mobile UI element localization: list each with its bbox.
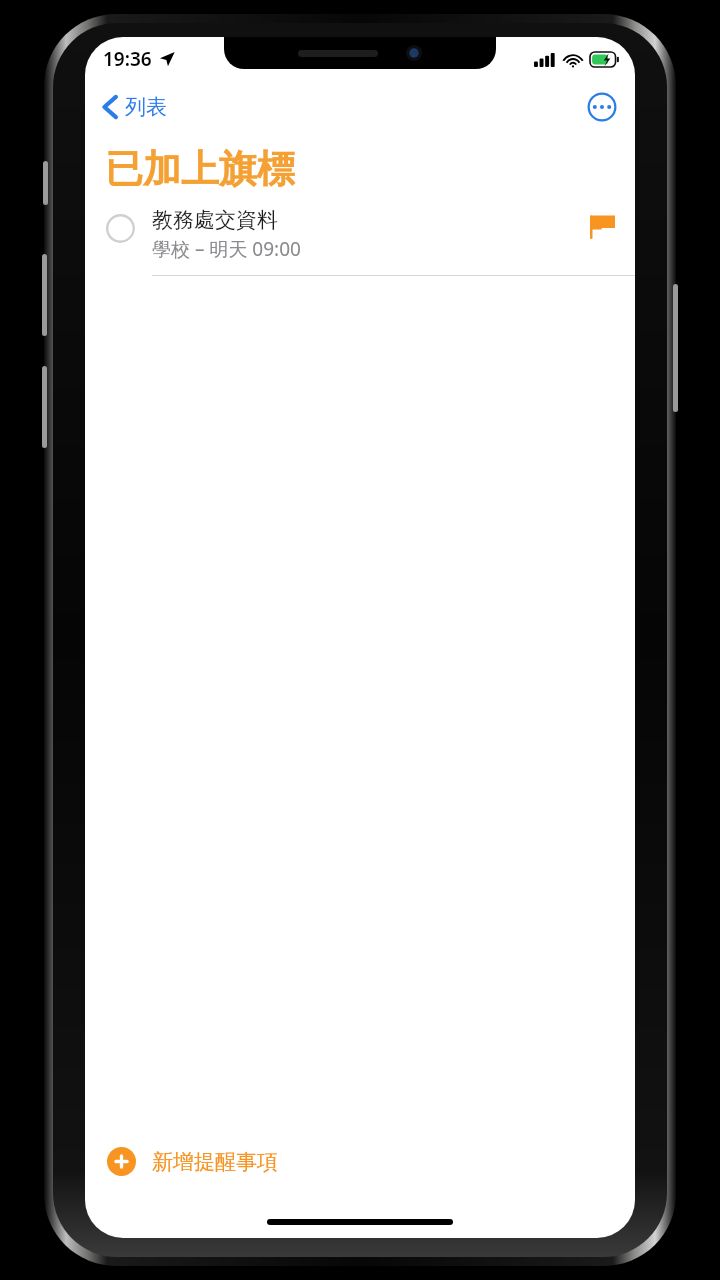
other: Flagged <box>587 211 617 241</box>
button[interactable]: Mark complete <box>105 213 135 243</box>
staticText: 新增提醒事項 <box>152 1149 278 1175</box>
staticText: 列表 <box>125 94 167 120</box>
button[interactable]: Mark complete <box>85 207 635 276</box>
staticText: 學校 – 明天 09:00 <box>152 236 301 262</box>
staticText: 教務處交資料 <box>152 207 278 233</box>
button[interactable]: 列表 <box>97 90 173 124</box>
staticText: 19:36 <box>103 46 152 72</box>
button[interactable]: 新增提醒事項 <box>85 1139 635 1184</box>
button[interactable]: More options <box>585 90 619 124</box>
staticText: 已加上旗標 <box>105 145 295 193</box>
